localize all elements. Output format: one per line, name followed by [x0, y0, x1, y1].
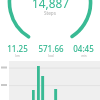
staticText: 11.25 — [7, 43, 28, 54]
staticText: 14,887 — [32, 0, 69, 11]
button[interactable]: 11.25 — [0, 43, 34, 58]
button[interactable]: Step goal progress — [0, 0, 100, 58]
staticText: km — [15, 54, 20, 58]
staticText: 571.66 — [38, 43, 64, 54]
button[interactable]: 04:45 — [67, 43, 100, 58]
staticText: 04:45 — [73, 43, 94, 54]
staticText: min — [81, 54, 87, 58]
staticText: kcal — [48, 54, 54, 58]
button[interactable]: Activity chart — [0, 0, 100, 100]
staticText: Steps — [44, 10, 56, 16]
button[interactable]: 571.66 — [34, 43, 67, 58]
